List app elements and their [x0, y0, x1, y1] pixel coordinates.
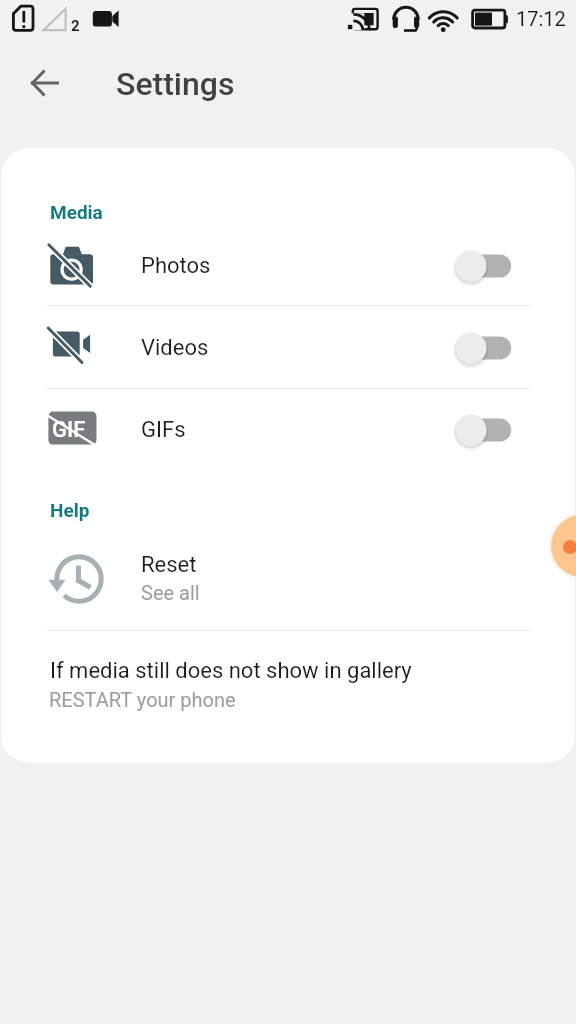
staticText: GIFs [141, 417, 186, 443]
button[interactable]: Reset [1, 530, 575, 620]
button[interactable]: Toggle Photos [446, 239, 526, 295]
staticText: 2 [71, 17, 80, 35]
staticText: Videos [141, 335, 209, 361]
staticText: If media still does not show in gallery [50, 658, 412, 684]
staticText: 17:12 [516, 7, 566, 30]
staticText: Help [50, 499, 90, 521]
button[interactable]: GIF [1, 390, 575, 472]
button[interactable]: Photos [1, 226, 575, 308]
staticText: Settings [116, 65, 235, 103]
staticText: See all [141, 581, 200, 604]
staticText: Reset [141, 552, 197, 578]
staticText: Media [50, 201, 103, 223]
button[interactable]: Videos [1, 308, 575, 390]
button[interactable]: Toggle GIFs [446, 403, 526, 459]
button[interactable]: Toggle Videos [446, 321, 526, 377]
staticText: Photos [141, 253, 211, 279]
staticText: GIF [52, 417, 86, 443]
staticText: RESTART your phone [49, 688, 236, 711]
button[interactable]: Back [19, 57, 71, 109]
